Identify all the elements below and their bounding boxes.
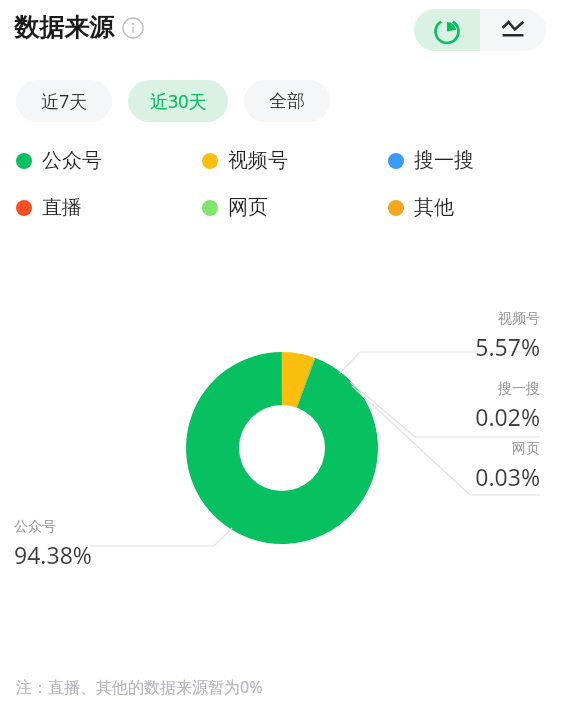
staticText: 0.03% <box>475 461 540 492</box>
staticText: 全部 <box>269 90 305 113</box>
staticText: 搜一搜 <box>498 380 540 398</box>
staticText: 视频号 <box>498 310 540 328</box>
button[interactable]: 近7天 <box>16 80 112 122</box>
button[interactable]: 网页 <box>202 195 388 220</box>
staticText: 注：直播、其他的数据来源暂为0% <box>16 676 263 698</box>
staticText: 网页 <box>512 440 540 458</box>
staticText: 网页 <box>228 195 268 220</box>
button[interactable]: 折线图 <box>480 9 546 51</box>
staticText: 搜一搜 <box>414 148 474 173</box>
staticText: 数据来源 <box>14 12 114 43</box>
staticText: 0.02% <box>475 401 540 432</box>
staticText: 公众号 <box>42 148 102 173</box>
staticText: 近7天 <box>41 89 88 114</box>
button[interactable]: 近30天 <box>128 80 228 122</box>
staticText: 其他 <box>414 195 454 220</box>
button[interactable]: 饼图 <box>414 9 480 51</box>
staticText: 近30天 <box>150 89 207 114</box>
staticText: 94.38% <box>14 539 92 570</box>
button[interactable]: 搜一搜 <box>388 148 538 173</box>
button[interactable]: 视频号 <box>202 148 388 173</box>
staticText: 视频号 <box>228 148 288 173</box>
button[interactable]: 公众号 <box>16 148 202 173</box>
button[interactable]: 说明 <box>122 17 144 39</box>
staticText: 公众号 <box>14 518 56 536</box>
staticText: 直播 <box>42 195 82 220</box>
button[interactable]: 直播 <box>16 195 202 220</box>
staticText: 5.57% <box>475 331 540 362</box>
button[interactable]: 全部 <box>244 80 330 122</box>
button[interactable]: 其他 <box>388 195 538 220</box>
